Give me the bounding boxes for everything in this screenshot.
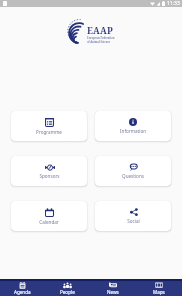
staticText: Calendar	[39, 219, 59, 225]
staticText: Programme	[36, 129, 62, 135]
staticText: People	[60, 289, 75, 295]
staticText: 11:33	[167, 0, 180, 7]
staticText: Maps	[153, 289, 165, 295]
staticText: Sponsors	[39, 173, 60, 179]
button[interactable]: Agenda	[0, 281, 45, 296]
staticText: Information	[120, 128, 146, 134]
staticText: of Animal Science	[87, 40, 111, 44]
button[interactable]: Sponsors	[11, 156, 87, 186]
button[interactable]: Information	[95, 111, 171, 141]
button[interactable]: News	[90, 281, 136, 296]
staticText: Social	[127, 218, 140, 224]
button[interactable]: Questions	[95, 156, 171, 186]
button[interactable]: Programme	[11, 111, 87, 141]
button[interactable]: Calendar	[11, 201, 87, 231]
staticText: Questions	[122, 173, 144, 179]
staticText: Agenda	[14, 289, 31, 295]
staticText: EAAP	[87, 24, 113, 36]
button[interactable]: Maps	[136, 281, 182, 296]
staticText: News	[107, 289, 119, 295]
button[interactable]: People	[45, 281, 90, 296]
button[interactable]: Social	[95, 201, 171, 231]
staticText: European Federation	[87, 36, 115, 40]
